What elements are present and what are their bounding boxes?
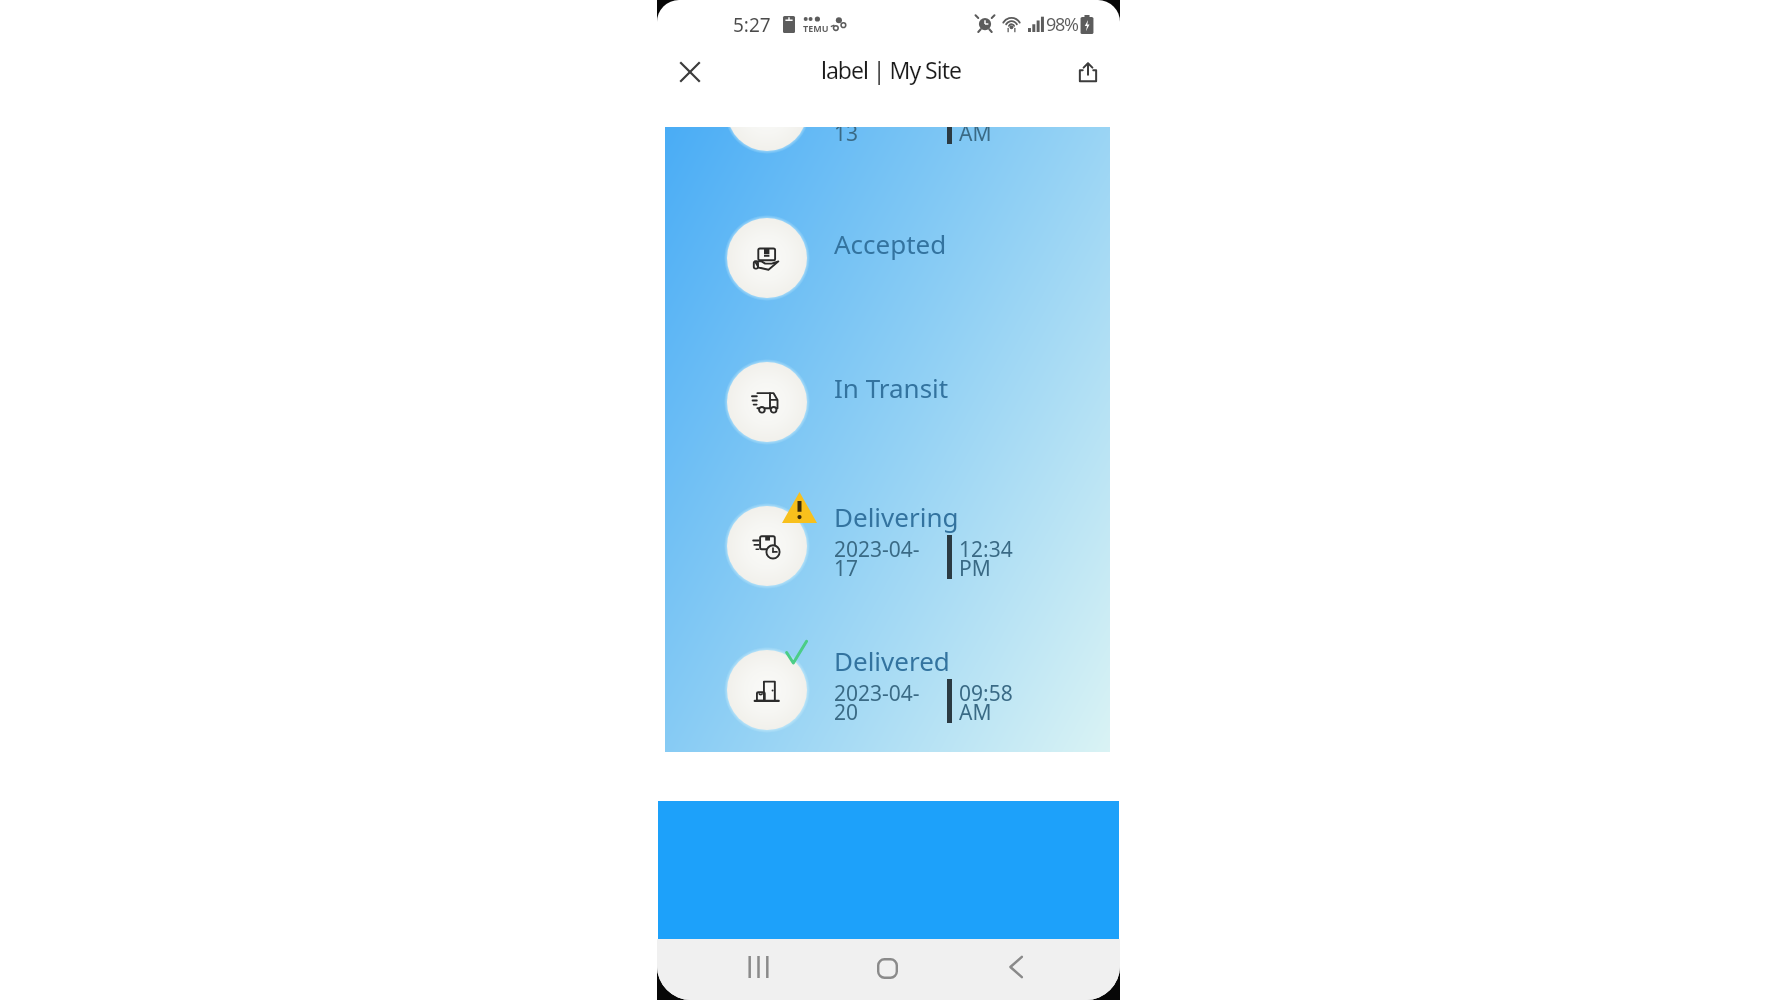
staticText: 09:58 bbox=[959, 679, 1013, 708]
staticText: 13 bbox=[834, 127, 859, 148]
staticText: Delivering bbox=[834, 499, 959, 534]
staticText: In Transit bbox=[834, 370, 949, 405]
button[interactable]: Delivering bbox=[665, 502, 1110, 590]
staticText: 2023-04- bbox=[834, 127, 920, 129]
staticText: AM bbox=[959, 127, 992, 148]
staticText: Delivered bbox=[834, 643, 950, 678]
button[interactable]: Delivered bbox=[665, 646, 1110, 734]
button[interactable]: In Transit bbox=[665, 358, 1110, 446]
button[interactable]: Shipped bbox=[665, 127, 1110, 155]
button[interactable]: Recents bbox=[732, 941, 784, 993]
staticText: AM bbox=[959, 698, 992, 727]
staticText: 2023-04- bbox=[834, 535, 920, 564]
staticText: TEMU bbox=[803, 22, 829, 34]
staticText: 20 bbox=[834, 698, 859, 727]
staticText: Accepted bbox=[834, 226, 947, 261]
staticText: 98% bbox=[1046, 12, 1078, 37]
button[interactable]: Share bbox=[1066, 50, 1110, 94]
staticText: 5:27 bbox=[733, 12, 771, 38]
staticText: 08:21 bbox=[959, 127, 1013, 129]
staticText: label | My Site bbox=[821, 54, 961, 85]
staticText: 2023-04- bbox=[834, 679, 920, 708]
staticText: PM bbox=[959, 554, 991, 583]
staticText: 17 bbox=[834, 554, 859, 583]
button[interactable]: Back bbox=[990, 941, 1042, 993]
button[interactable]: Accepted bbox=[665, 214, 1110, 302]
button[interactable]: Home bbox=[861, 942, 913, 994]
button[interactable]: Close bbox=[668, 50, 712, 94]
staticText: 12:34 bbox=[959, 535, 1013, 564]
